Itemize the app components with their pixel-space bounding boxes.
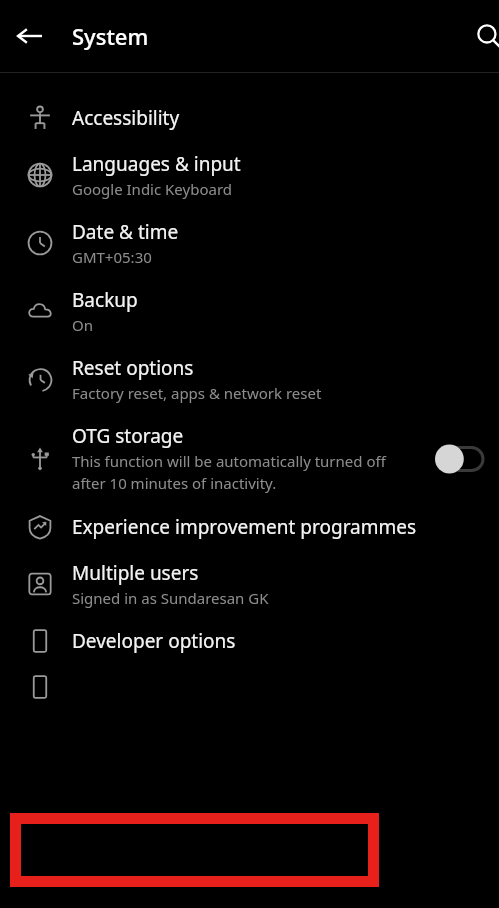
button[interactable]: Developer options xyxy=(0,618,499,664)
button[interactable]: Reset options xyxy=(0,345,499,413)
staticText: Accessibility xyxy=(72,105,180,131)
staticText: System xyxy=(72,21,149,51)
staticText: Experience improvement programmes xyxy=(72,514,417,540)
button[interactable]: Backup xyxy=(0,277,499,345)
staticText: Languages & input xyxy=(72,151,241,177)
staticText: Google Indic Keyboard xyxy=(72,179,233,199)
staticText: On xyxy=(72,315,93,335)
staticText: Date & time xyxy=(72,219,179,245)
button[interactable]: Date & time xyxy=(0,209,499,277)
button[interactable]: Languages & input xyxy=(0,141,499,209)
staticText: Signed in as Sundaresan GK xyxy=(72,588,269,608)
staticText: Factory reset, apps & network reset xyxy=(72,383,322,403)
staticText: Reset options xyxy=(72,355,194,381)
staticText: Multiple users xyxy=(72,560,199,586)
button[interactable]: Back xyxy=(6,12,54,60)
button[interactable]: Accessibility xyxy=(0,95,499,141)
staticText: Developer options xyxy=(72,628,236,654)
button[interactable]: Experience improvement programmes xyxy=(0,504,499,550)
staticText: This function will be automatically turn… xyxy=(72,451,386,494)
button[interactable]: OTG storage xyxy=(0,413,499,504)
button[interactable]: Multiple users xyxy=(0,550,499,618)
staticText: GMT+05:30 xyxy=(72,247,152,267)
button[interactable] xyxy=(0,664,499,710)
staticText: OTG storage xyxy=(72,423,184,449)
staticText: Backup xyxy=(72,287,138,313)
button[interactable]: Search xyxy=(465,12,499,60)
button[interactable]: OTG storage toggle xyxy=(433,443,485,475)
